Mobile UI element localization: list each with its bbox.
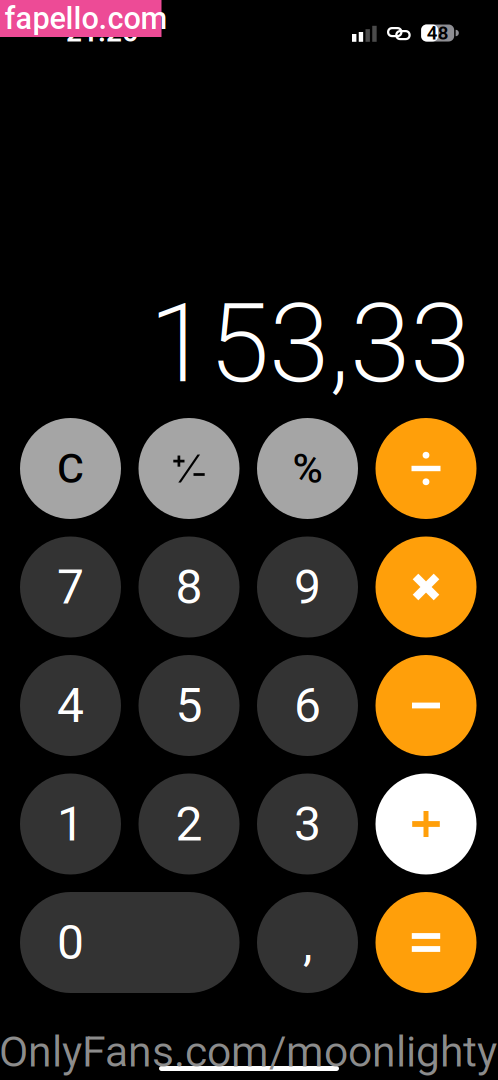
button[interactable]: Change sign (138, 418, 239, 519)
button[interactable]: Add (375, 773, 476, 874)
staticText: , (303, 915, 312, 972)
staticText: 6 (294, 677, 321, 734)
button[interactable]: Subtract (375, 655, 476, 756)
staticText: 4 (57, 677, 84, 734)
staticText: 2 (175, 796, 202, 852)
button[interactable]: 6 (257, 655, 358, 756)
staticText: OnlyFans.com/moonlighty (0, 1027, 497, 1077)
button[interactable]: 4 (20, 655, 121, 756)
staticText: C (57, 444, 84, 493)
button[interactable]: Equals (375, 892, 476, 993)
staticText: 1 (57, 796, 84, 852)
button[interactable]: C (20, 418, 121, 519)
button[interactable]: 3 (257, 773, 358, 874)
staticText: 48 (427, 22, 449, 44)
button[interactable]: 8 (138, 536, 239, 637)
staticText: 153,33 (149, 280, 470, 408)
staticText: 9 (294, 559, 321, 615)
button[interactable]: Multiply (375, 536, 476, 637)
button[interactable]: 2 (138, 773, 239, 874)
button[interactable]: % (257, 418, 358, 519)
button[interactable]: 1 (20, 773, 121, 874)
staticText: 5 (175, 677, 202, 734)
staticText: 0 (57, 914, 84, 971)
button[interactable]: 0 (20, 892, 239, 993)
staticText: fapello.com (4, 0, 167, 36)
button[interactable]: 7 (20, 536, 121, 637)
staticText: 7 (57, 559, 84, 615)
staticText: 8 (175, 559, 202, 615)
button[interactable]: 5 (138, 655, 239, 756)
staticText: 3 (294, 796, 321, 852)
button[interactable]: 9 (257, 536, 358, 637)
staticText: % (292, 444, 322, 493)
button[interactable]: Divide (375, 418, 476, 519)
button[interactable]: , (257, 892, 358, 993)
staticText: 21:26 (66, 16, 138, 48)
